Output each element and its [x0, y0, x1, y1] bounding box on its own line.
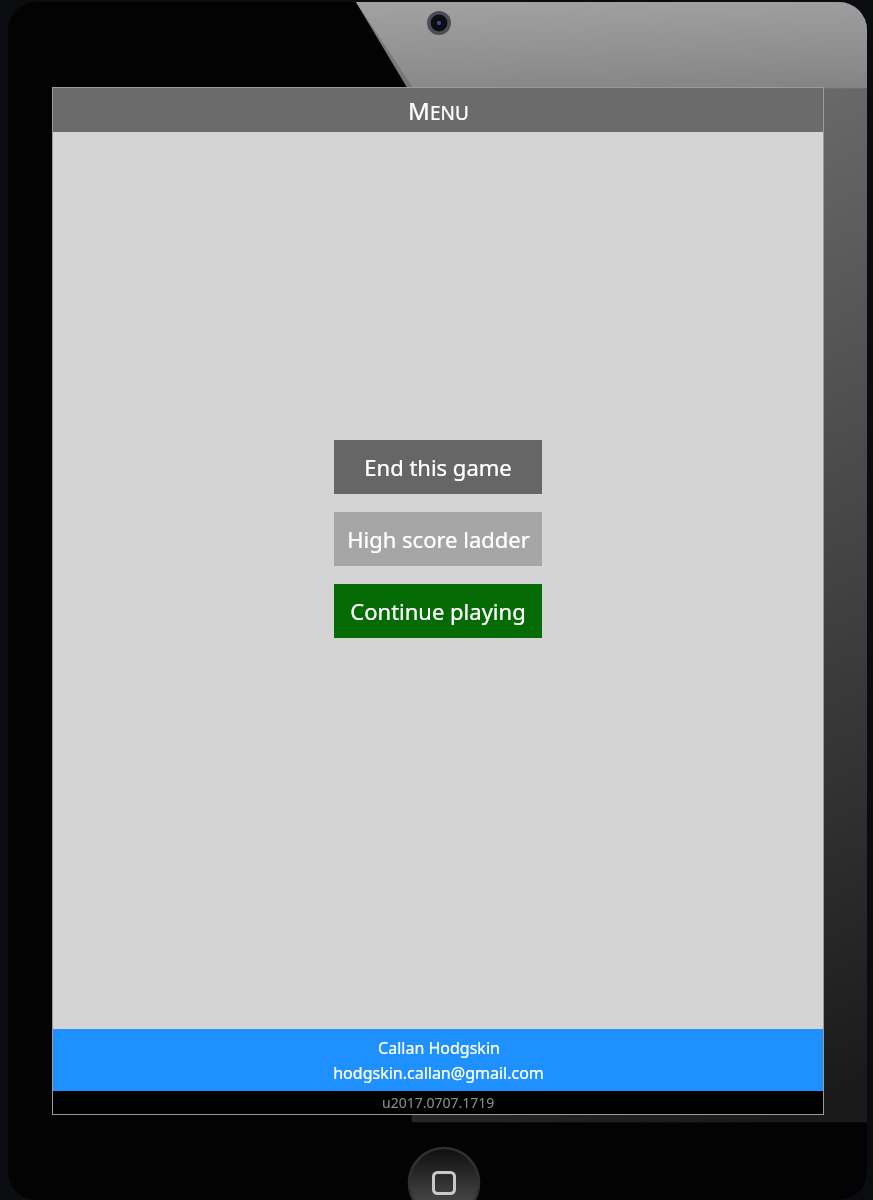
staticText: Continue playing [350, 596, 526, 626]
staticText: hodgskin.callan@gmail.com [333, 1062, 544, 1084]
button[interactable]: Continue playing [334, 584, 542, 638]
button[interactable]: End this game [334, 440, 542, 494]
staticText: u2017.0707.1719 [382, 1093, 495, 1112]
button[interactable]: High score ladder [334, 512, 542, 566]
other: Home [409, 1148, 479, 1200]
staticText: M [408, 94, 430, 127]
staticText: Callan Hodgskin [378, 1037, 500, 1059]
staticText: High score ladder [347, 524, 530, 554]
button[interactable]: Callan Hodgskin [53, 1029, 823, 1091]
staticText: ENU [430, 100, 469, 126]
staticText: End this game [364, 452, 512, 482]
